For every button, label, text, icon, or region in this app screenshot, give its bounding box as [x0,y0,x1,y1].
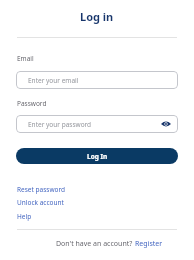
button[interactable]: Log In [16,148,178,164]
staticText: Password [17,99,47,108]
staticText: Don't have an account? [56,239,133,249]
button[interactable]: Register [135,239,163,249]
button[interactable]: Unlock account [17,198,64,207]
button[interactable]: Enter your password [16,115,178,133]
button[interactable]: Enter your email [16,71,178,89]
staticText: Log In [87,152,108,161]
staticText: Enter your email [28,76,79,85]
button[interactable]: Help [17,212,32,221]
staticText: Log in [80,9,114,24]
staticText: Email [17,54,34,63]
staticText: Enter your password [28,120,92,129]
button[interactable]: Reset password [17,185,65,194]
